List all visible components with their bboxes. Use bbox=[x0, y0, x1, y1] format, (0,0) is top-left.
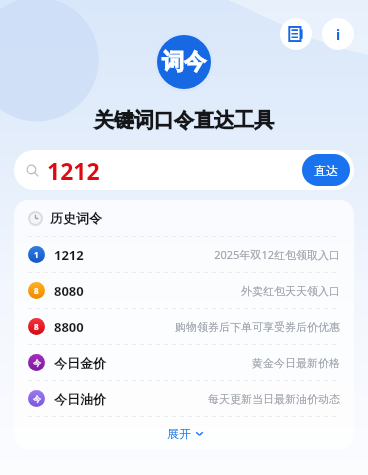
staticText: 1212 bbox=[47, 155, 302, 186]
staticText: 8 bbox=[34, 321, 39, 332]
button[interactable]: 展开 bbox=[28, 417, 340, 449]
staticText: 8 bbox=[34, 285, 39, 296]
button[interactable]: 今 bbox=[28, 381, 340, 416]
staticText: 购物领券后下单可享受券后价优惠 bbox=[175, 320, 340, 334]
button[interactable]: 8 bbox=[28, 309, 340, 344]
staticText: 每天更新当日最新油价动态 bbox=[208, 392, 340, 406]
button[interactable]: 直达 bbox=[302, 154, 350, 186]
staticText: 2025年双12红包领取入口 bbox=[214, 247, 340, 262]
staticText: i bbox=[336, 25, 341, 44]
staticText: 展开 bbox=[167, 426, 191, 441]
button[interactable]: Info bbox=[322, 18, 354, 50]
staticText: 今 bbox=[33, 394, 41, 404]
staticText: 历史词令 bbox=[50, 210, 102, 226]
staticText: 今 bbox=[33, 358, 41, 368]
staticText: 8800 bbox=[54, 318, 84, 336]
staticText: 8080 bbox=[54, 282, 84, 300]
staticText: 外卖红包天天领入口 bbox=[241, 284, 340, 298]
staticText: 1 bbox=[34, 249, 39, 260]
staticText: 今日金价 bbox=[54, 355, 106, 371]
staticText: 关键词口令直达工具 bbox=[94, 108, 274, 133]
staticText: 直达 bbox=[314, 163, 338, 178]
staticText: 今日油价 bbox=[54, 391, 106, 407]
staticText: 黄金今日最新价格 bbox=[252, 356, 340, 370]
button[interactable]: 8 bbox=[28, 273, 340, 308]
staticText: 词今 bbox=[162, 48, 206, 76]
button[interactable]: 1212 bbox=[14, 150, 354, 190]
button[interactable]: 今 bbox=[28, 345, 340, 380]
button[interactable]: 1 bbox=[28, 237, 340, 272]
staticText: 1212 bbox=[54, 246, 84, 264]
button[interactable]: Records bbox=[280, 18, 312, 50]
